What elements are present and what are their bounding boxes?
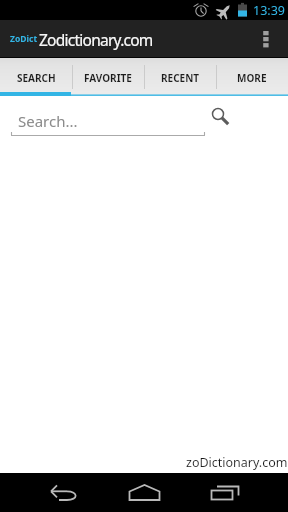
button[interactable]: More options bbox=[255, 20, 288, 57]
staticText: zoDictionary.com bbox=[186, 454, 288, 471]
button[interactable]: Search bbox=[206, 102, 230, 126]
staticText: SEARCH bbox=[17, 71, 56, 85]
staticText: ZoDict bbox=[10, 33, 38, 45]
button[interactable]: Home bbox=[104, 473, 184, 512]
button[interactable]: Back bbox=[0, 473, 104, 512]
button[interactable]: FAVORITE bbox=[72, 57, 144, 96]
button[interactable]: RECENT bbox=[144, 57, 216, 96]
staticText: RECENT bbox=[161, 71, 200, 85]
staticText: FAVORITE bbox=[84, 71, 132, 85]
staticText: 13:39 bbox=[253, 2, 285, 19]
button[interactable]: Recents bbox=[184, 473, 288, 512]
button[interactable]: SEARCH bbox=[0, 57, 72, 96]
staticText: MORE bbox=[237, 71, 267, 85]
staticText: Zodictionary.com bbox=[39, 29, 153, 50]
staticText: Search... bbox=[18, 111, 78, 131]
button[interactable]: MORE bbox=[216, 57, 288, 96]
